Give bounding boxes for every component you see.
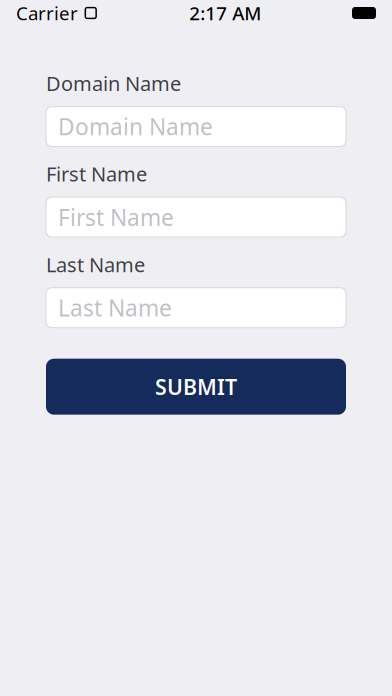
staticText: SUBMIT [155,372,237,401]
staticText: First Name [46,161,147,187]
staticText: Carrier [16,1,78,25]
staticText: Domain Name [46,70,181,97]
button[interactable]: Domain Name [46,107,346,147]
staticText: Last Name [58,293,172,323]
staticText: Domain Name [58,111,213,142]
staticText: 2:17 AM [189,1,261,25]
staticText: First Name [58,202,174,232]
button[interactable]: SUBMIT [46,359,346,415]
staticText: Last Name [46,251,145,278]
button[interactable]: First Name [46,197,346,237]
button[interactable]: Last Name [46,288,346,328]
